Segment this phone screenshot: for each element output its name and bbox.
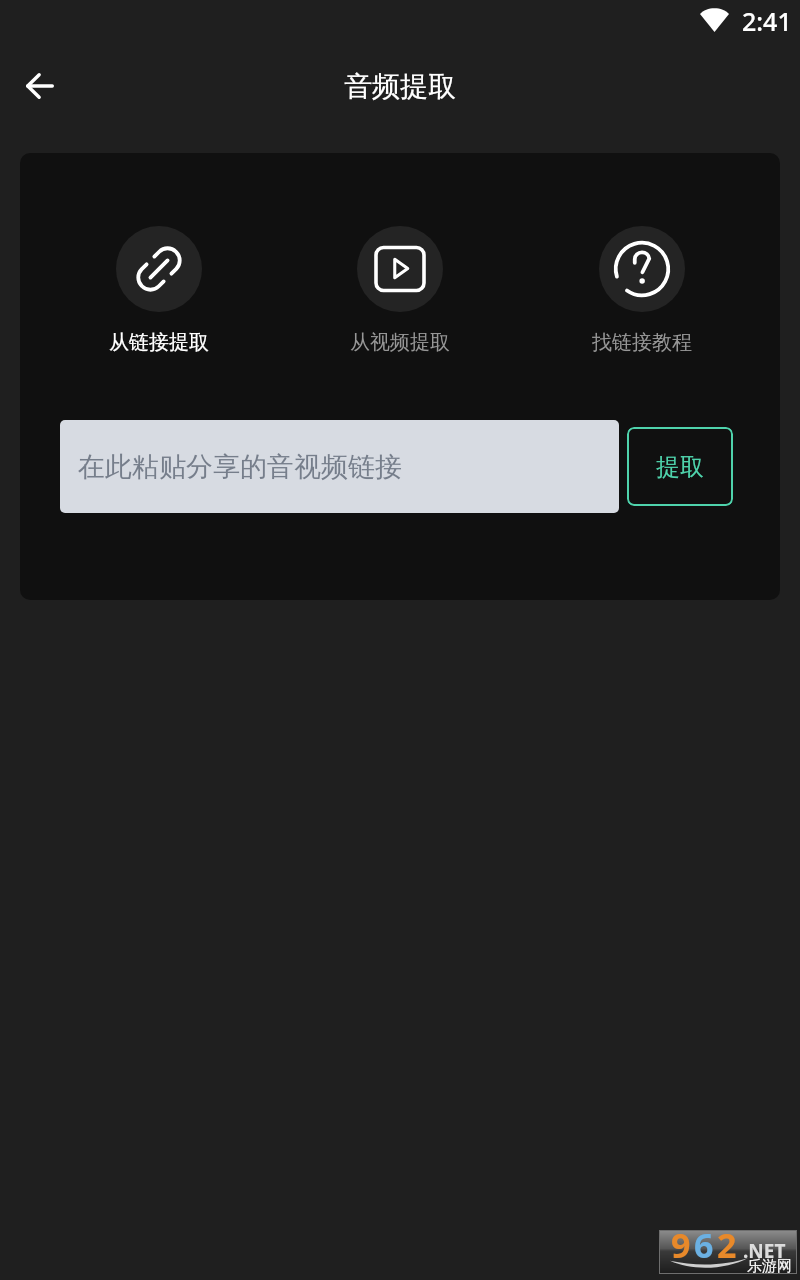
staticText: 2:41 [742, 4, 792, 38]
staticText: 9 [671, 1222, 694, 1266]
staticText: 从链接提取 [109, 330, 209, 355]
button[interactable]: 从链接提取 [96, 226, 222, 355]
staticText: 2 [717, 1222, 740, 1266]
staticText: .NET [743, 1238, 786, 1264]
button[interactable]: 从视频提取 [337, 226, 463, 355]
button[interactable]: Back [8, 54, 72, 118]
staticText: 6 [694, 1222, 717, 1266]
button[interactable]: 找链接教程 [579, 226, 705, 355]
staticText: 在此粘贴分享的音视频链接 [78, 450, 402, 484]
staticText: 乐游网 [747, 1257, 792, 1276]
staticText: 提取 [656, 452, 704, 482]
staticText: 找链接教程 [592, 330, 692, 355]
staticText: 从视频提取 [350, 330, 450, 355]
button[interactable]: 在此粘贴分享的音视频链接 [60, 420, 619, 513]
staticText: 音频提取 [344, 69, 456, 104]
button[interactable]: 提取 [627, 427, 733, 506]
